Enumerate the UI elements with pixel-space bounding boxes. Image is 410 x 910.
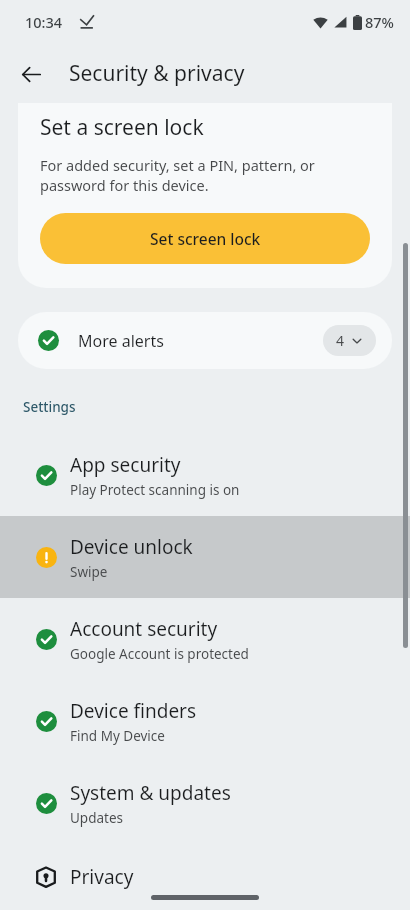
- staticText: 4: [336, 331, 345, 350]
- button[interactable]: Set screen lock: [40, 213, 370, 264]
- staticText: Device finders: [70, 698, 197, 724]
- staticText: Account security: [70, 616, 218, 642]
- button[interactable]: App security: [0, 434, 410, 516]
- staticText: Settings: [23, 398, 76, 416]
- button[interactable]: System & updates: [0, 762, 410, 844]
- staticText: Play Protect scanning is on: [70, 481, 240, 499]
- staticText: Privacy: [70, 864, 134, 890]
- staticText: Security & privacy: [69, 59, 245, 88]
- staticText: Device unlock: [70, 534, 193, 560]
- staticText: Set screen lock: [150, 228, 261, 249]
- staticText: 10:34: [25, 12, 63, 32]
- button[interactable]: Back: [9, 52, 53, 96]
- button[interactable]: Device unlock: [0, 516, 410, 598]
- staticText: System & updates: [70, 780, 231, 806]
- staticText: Google Account is protected: [70, 645, 249, 663]
- staticText: Find My Device: [70, 727, 165, 745]
- staticText: More alerts: [78, 330, 323, 352]
- staticText: Set a screen lock: [40, 113, 204, 142]
- button[interactable]: Account security: [0, 598, 410, 680]
- button[interactable]: Privacy: [0, 844, 410, 910]
- staticText: Updates: [70, 809, 124, 827]
- button[interactable]: Device finders: [0, 680, 410, 762]
- staticText: 87%: [365, 12, 394, 32]
- staticText: For added security, set a PIN, pattern, …: [40, 155, 370, 196]
- button[interactable]: More alerts: [18, 312, 392, 369]
- staticText: App security: [70, 452, 181, 478]
- staticText: Swipe: [70, 563, 108, 581]
